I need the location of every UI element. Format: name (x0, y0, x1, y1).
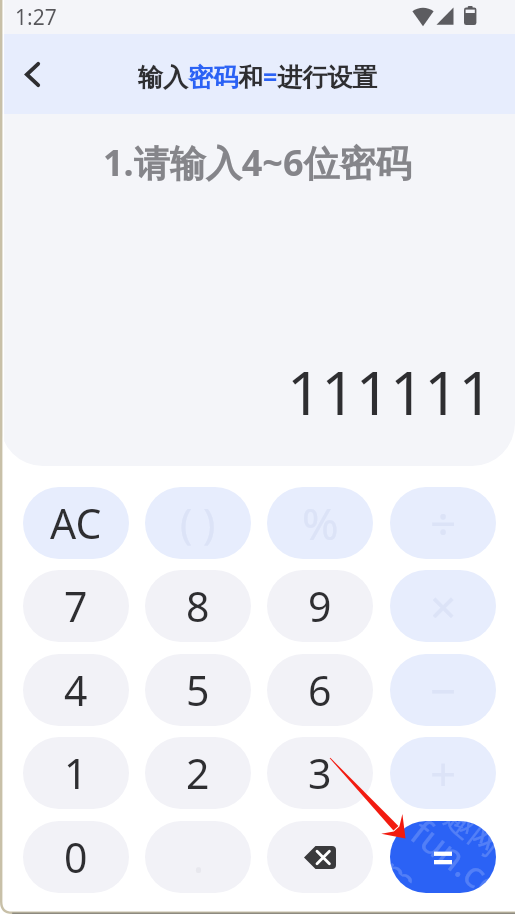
button[interactable]: − (390, 654, 496, 726)
button[interactable]: 1 (23, 737, 129, 809)
button[interactable]: AC (23, 487, 129, 559)
button[interactable]: 4 (23, 654, 129, 726)
staticText: 5 (186, 662, 210, 718)
button[interactable]: % (267, 487, 373, 559)
button[interactable]: Backspace (267, 821, 373, 893)
button[interactable]: . (145, 821, 251, 893)
staticText: 1:27 (15, 3, 57, 32)
staticText: 1.请输入4~6位密码 (103, 138, 412, 187)
button[interactable]: ( ) (145, 487, 251, 559)
staticText: 输入密码和=进行设置 (138, 59, 378, 93)
staticText: 8 (186, 578, 210, 634)
button[interactable]: 2 (145, 737, 251, 809)
button[interactable]: × (390, 570, 496, 642)
button[interactable]: 8 (145, 570, 251, 642)
staticText: 2 (186, 745, 210, 801)
staticText: 1 (64, 745, 88, 801)
button[interactable]: + (390, 737, 496, 809)
staticText: 4 (64, 662, 88, 718)
button[interactable]: ÷ (390, 487, 496, 559)
staticText: 7 (64, 578, 88, 634)
staticText: 0 (64, 829, 88, 885)
staticText: 111111 (287, 351, 493, 433)
button[interactable]: Back (9, 51, 55, 97)
button[interactable]: 0 (23, 821, 129, 893)
staticText: ( ) (180, 495, 216, 551)
button[interactable]: 5 (145, 654, 251, 726)
staticText: 3 (308, 745, 332, 801)
staticText: fun.com (390, 821, 496, 893)
staticText: % (302, 493, 339, 553)
button[interactable]: Equals (390, 821, 496, 893)
button[interactable]: 9 (267, 570, 373, 642)
staticText: × (430, 575, 457, 638)
staticText: 趣网 (438, 821, 496, 864)
staticText: AC (50, 495, 102, 551)
button[interactable]: 3 (267, 737, 373, 809)
staticText: 6 (308, 662, 332, 718)
button[interactable]: 7 (23, 570, 129, 642)
button[interactable]: 6 (267, 654, 373, 726)
staticText: 9 (308, 578, 332, 634)
